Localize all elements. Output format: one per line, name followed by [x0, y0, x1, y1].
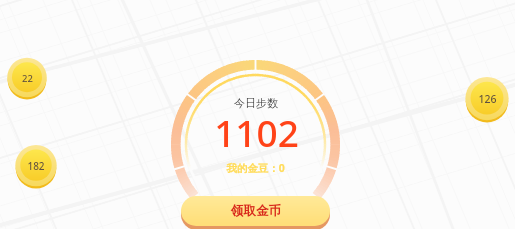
staticText: 182 [27, 159, 45, 173]
button[interactable]: Collect 126 coins [464, 76, 510, 122]
button[interactable]: Collect 22 coins [6, 57, 48, 99]
staticText: 我的金豆：0 [226, 161, 285, 175]
staticText: 1102 [214, 107, 299, 157]
staticText: 22 [22, 72, 33, 85]
staticText: 今日步数 [234, 96, 278, 110]
staticText: 领取金币 [231, 203, 281, 219]
staticText: 126 [478, 92, 497, 106]
button[interactable]: Collect 182 coins [14, 144, 58, 188]
button[interactable]: 领取金币 [181, 196, 330, 226]
